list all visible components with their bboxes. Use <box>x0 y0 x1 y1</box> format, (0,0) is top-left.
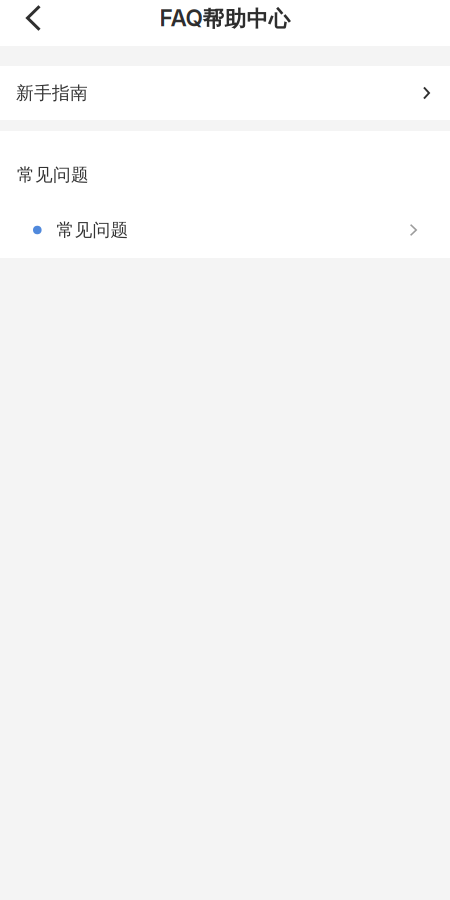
button[interactable]: 返回 <box>0 0 55 46</box>
staticText: 常见问题 <box>57 219 129 241</box>
staticText: 新手指南 <box>16 82 88 104</box>
staticText: 常见问题 <box>17 164 89 186</box>
button[interactable]: 新手指南 <box>0 66 450 120</box>
staticText: FAQ帮助中心 <box>159 5 290 32</box>
button[interactable]: 常见问题 <box>0 203 450 257</box>
